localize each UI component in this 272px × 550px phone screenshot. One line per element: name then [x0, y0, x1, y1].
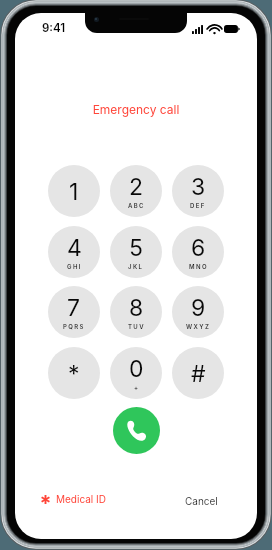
staticText: + [134, 384, 140, 391]
staticText: 9:41 [42, 21, 66, 35]
staticText: JKL [128, 263, 144, 270]
staticText: 3 [191, 173, 206, 201]
staticText: 9 [191, 294, 206, 322]
staticText: TUV [128, 323, 145, 330]
button[interactable]: 0 [110, 347, 162, 399]
staticText: 0 [129, 355, 144, 383]
button[interactable]: 1 [48, 165, 100, 217]
staticText: 2 [129, 173, 144, 201]
staticText: Emergency call [15, 102, 257, 117]
button[interactable]: Cancel [185, 495, 218, 507]
staticText: 5 [129, 234, 143, 262]
staticText: DEF [190, 202, 206, 209]
staticText: 4 [67, 234, 82, 262]
button[interactable]: 7 [48, 286, 100, 338]
staticText: 8 [129, 294, 144, 322]
button[interactable]: Call [113, 407, 160, 454]
staticText: Cancel [185, 495, 218, 507]
staticText: Medical ID [56, 493, 106, 505]
staticText: * [68, 360, 80, 388]
button[interactable]: Medical ID [41, 493, 106, 505]
button[interactable]: # [172, 347, 224, 399]
staticText: 6 [191, 234, 206, 262]
staticText: GHI [67, 263, 82, 270]
staticText: 7 [67, 294, 81, 322]
button[interactable]: 8 [110, 286, 162, 338]
staticText: # [191, 360, 206, 388]
button[interactable]: 9 [172, 286, 224, 338]
staticText: PQRS [63, 323, 85, 330]
button[interactable]: 6 [172, 226, 224, 278]
button[interactable]: 4 [48, 226, 100, 278]
staticText: MNO [189, 263, 208, 270]
button[interactable]: 5 [110, 226, 162, 278]
staticText: 1 [69, 178, 79, 206]
button[interactable]: * [48, 347, 100, 399]
button[interactable]: 3 [172, 165, 224, 217]
staticText: WXYZ [186, 323, 211, 330]
button[interactable]: 2 [110, 165, 162, 217]
staticText: ABC [128, 202, 145, 209]
